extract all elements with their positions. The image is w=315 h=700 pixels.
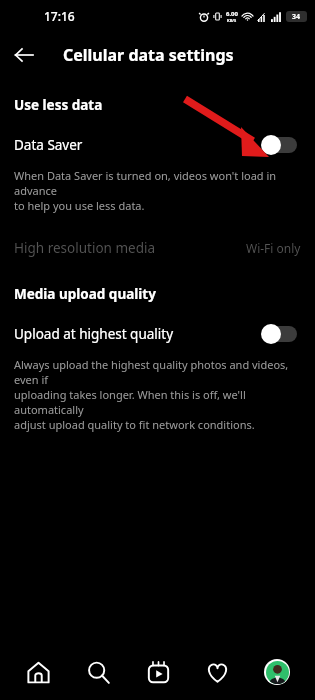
staticText: Use less data xyxy=(14,96,103,114)
button[interactable]: Activity xyxy=(195,650,239,694)
staticText: High resolution media xyxy=(14,239,155,257)
staticText: Always upload the highest quality photos… xyxy=(14,357,301,432)
staticText: When Data Saver is turned on, videos won… xyxy=(14,168,301,213)
button[interactable]: Toggle xyxy=(261,324,301,344)
staticText: Upload at highest quality xyxy=(14,325,174,343)
button[interactable]: Data Saver xyxy=(0,130,315,160)
button[interactable]: Profile xyxy=(255,650,299,694)
button[interactable]: Upload at highest quality xyxy=(0,319,315,349)
button[interactable]: Search xyxy=(76,650,120,694)
button[interactable]: Toggle xyxy=(261,135,301,155)
staticText: 6.00 xyxy=(226,10,238,18)
staticText: 34 xyxy=(292,12,301,22)
button[interactable]: Back xyxy=(6,37,42,73)
button[interactable]: High resolution media xyxy=(0,235,315,261)
staticText: 17:16 xyxy=(44,8,75,24)
staticText: Wi-Fi only xyxy=(246,240,301,256)
button[interactable]: Home xyxy=(16,650,60,694)
button[interactable]: Reels xyxy=(136,650,180,694)
staticText: Cellular data settings xyxy=(63,44,234,66)
staticText: KB/S xyxy=(227,18,237,23)
staticText: Data Saver xyxy=(14,136,83,154)
staticText: Media upload quality xyxy=(14,285,156,303)
